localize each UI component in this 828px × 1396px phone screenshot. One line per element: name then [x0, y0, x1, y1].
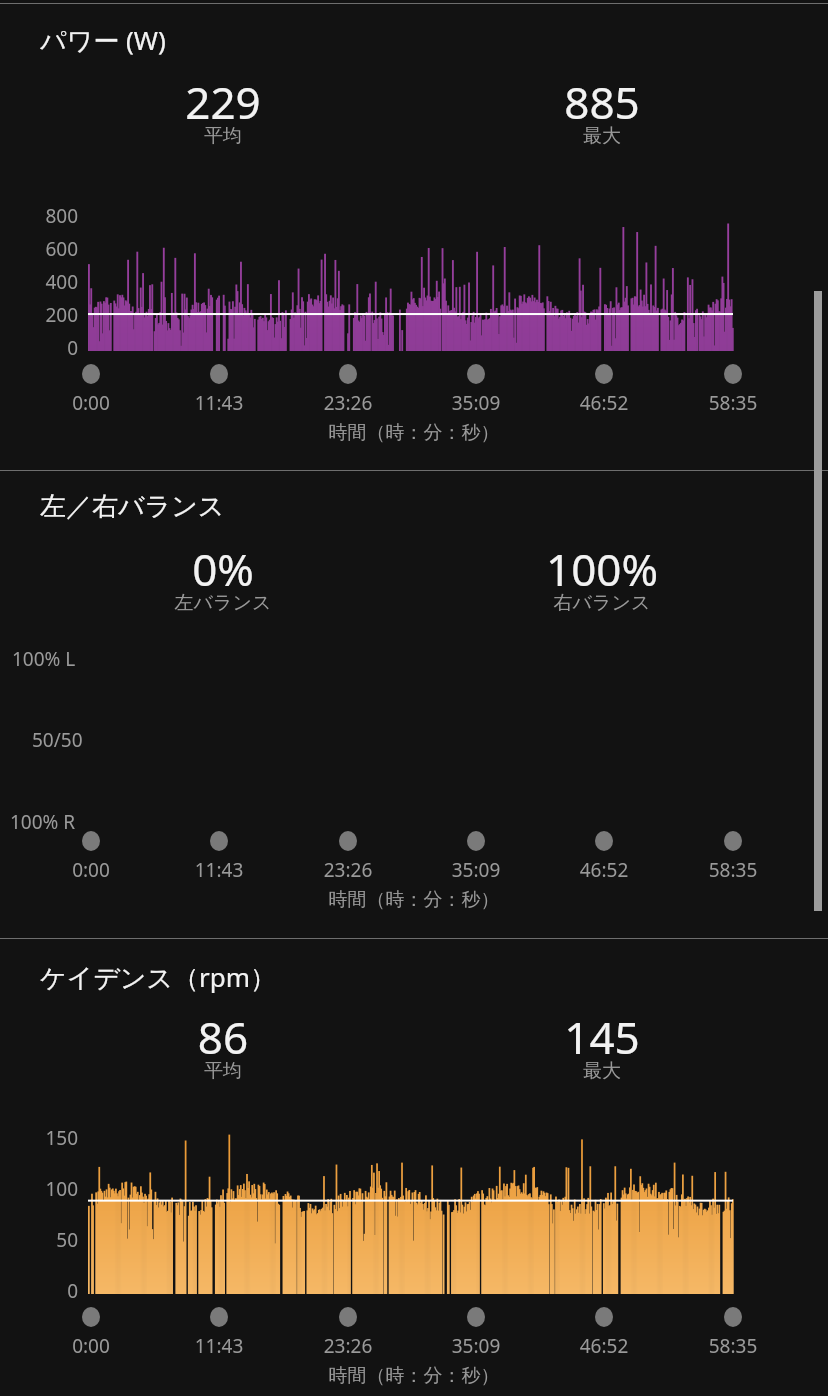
staticText: 58:35 [663, 390, 803, 416]
staticText: パワー (W) [40, 22, 166, 58]
staticText: 100% L [12, 646, 76, 672]
staticText: 35:09 [406, 857, 546, 883]
staticText: 885 [452, 72, 752, 132]
staticText: 11:43 [149, 390, 289, 416]
staticText: 23:26 [278, 390, 418, 416]
staticText: 50/50 [32, 727, 83, 753]
staticText: 100% R [10, 809, 76, 835]
staticText: 800 [0, 203, 78, 229]
staticText: 時間（時：分：秒） [204, 888, 624, 912]
staticText: 0:00 [21, 857, 161, 883]
staticText: 11:43 [149, 857, 289, 883]
staticText: 150 [0, 1125, 78, 1151]
staticText: 最大 [452, 1059, 752, 1083]
staticText: 58:35 [663, 1333, 803, 1359]
staticText: 右バランス [452, 591, 752, 615]
staticText: 145 [452, 1007, 752, 1067]
staticText: 0% [73, 539, 373, 599]
button[interactable]: ケイデンス（rpm） [0, 939, 828, 1396]
staticText: 最大 [452, 124, 752, 148]
staticText: 400 [0, 269, 78, 295]
staticText: 23:26 [278, 857, 418, 883]
staticText: 600 [0, 236, 78, 262]
button[interactable]: 左／右バランス [0, 471, 828, 938]
staticText: 200 [0, 302, 78, 328]
staticText: 86 [73, 1007, 373, 1067]
staticText: 0 [0, 1278, 78, 1304]
staticText: 46:52 [534, 857, 674, 883]
staticText: 23:26 [278, 1333, 418, 1359]
staticText: ケイデンス（rpm） [40, 959, 277, 995]
staticText: 46:52 [534, 1333, 674, 1359]
staticText: 35:09 [406, 1333, 546, 1359]
staticText: 46:52 [534, 390, 674, 416]
staticText: 100 [0, 1176, 78, 1202]
staticText: 0:00 [21, 1333, 161, 1359]
staticText: 58:35 [663, 857, 803, 883]
staticText: 平均 [73, 1059, 373, 1083]
staticText: 229 [73, 72, 373, 132]
staticText: 時間（時：分：秒） [204, 1364, 624, 1388]
staticText: 100% [452, 539, 752, 599]
staticText: 時間（時：分：秒） [204, 421, 624, 445]
staticText: 0:00 [21, 390, 161, 416]
staticText: 左バランス [73, 591, 373, 615]
staticText: 11:43 [149, 1333, 289, 1359]
button[interactable]: パワー (W) [0, 4, 828, 470]
staticText: 平均 [73, 124, 373, 148]
staticText: 50 [0, 1227, 78, 1253]
staticText: 左／右バランス [40, 490, 225, 523]
staticText: 0 [0, 335, 78, 361]
staticText: 35:09 [406, 390, 546, 416]
